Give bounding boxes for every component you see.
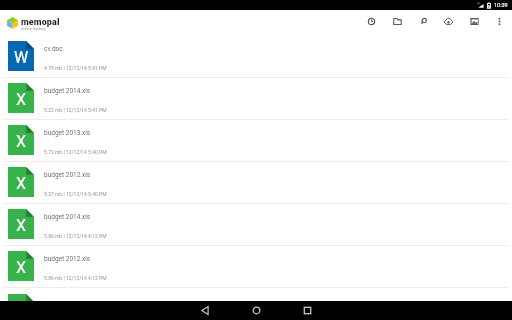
staticText: X	[16, 174, 27, 193]
staticText: budget 2012.xls	[44, 255, 91, 263]
staticText: 5.27 mb | 12/12/14 5:40 PM	[44, 191, 107, 197]
staticText: 5.86 mb | 12/12/14 4:12 PM	[44, 275, 107, 281]
staticText: X	[16, 90, 27, 109]
button[interactable]: X	[0, 246, 512, 288]
button[interactable]: X	[0, 78, 512, 120]
staticText: cv.doc	[44, 45, 63, 53]
staticText: budget 2014.xls	[44, 87, 91, 95]
button[interactable]: X	[0, 120, 512, 162]
staticText: 5.72 mb | 12/12/14 5:40 PM	[44, 149, 107, 155]
staticText: budget 2014.xls	[44, 213, 91, 221]
staticText: X	[16, 258, 27, 277]
staticText: 4.79 mb | 12/12/14 5:41 PM	[44, 65, 107, 71]
staticText: online backup	[21, 26, 46, 31]
button[interactable]	[0, 288, 512, 302]
button[interactable]: History	[358, 10, 384, 36]
staticText: 10:39	[494, 2, 508, 8]
staticText: budget 2013.xls	[44, 129, 91, 137]
button[interactable]: Recents	[282, 301, 333, 320]
button[interactable]: Folders	[384, 10, 410, 36]
button[interactable]: Home	[231, 301, 282, 320]
button[interactable]: X	[0, 162, 512, 204]
button[interactable]: Upload	[435, 10, 461, 36]
staticText: W	[14, 48, 29, 67]
button[interactable]: More options	[486, 10, 512, 36]
button[interactable]: Photos	[461, 10, 487, 36]
staticText: 5.86 mb | 12/12/14 4:12 PM	[44, 233, 107, 239]
staticText: X	[16, 132, 27, 151]
button[interactable]: Search	[410, 10, 436, 36]
staticText: memopal	[21, 17, 60, 28]
staticText: X	[16, 216, 27, 235]
staticText: 5.22 mb | 12/12/14 5:41 PM	[44, 107, 107, 113]
button[interactable]: W	[0, 36, 512, 78]
button[interactable]: Back	[180, 301, 231, 320]
staticText: budget 2012.xls	[44, 171, 91, 179]
button[interactable]: X	[0, 204, 512, 246]
